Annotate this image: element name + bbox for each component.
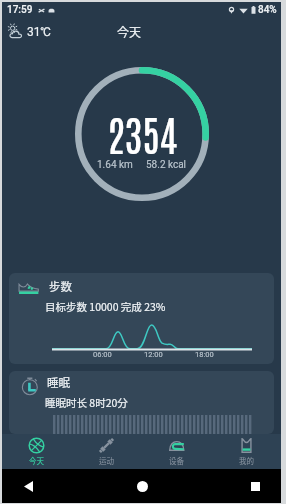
- staticText: 我的: [239, 455, 254, 466]
- staticText: 今天: [117, 23, 142, 40]
- button[interactable]: Back: [16, 474, 40, 498]
- staticText: 58.2 kcal: [146, 159, 187, 171]
- staticText: 目标步数 10000 完成 23%: [45, 299, 166, 314]
- staticText: 31℃: [27, 25, 52, 39]
- button[interactable]: 今天: [2, 434, 71, 469]
- button[interactable]: 睡眠: [9, 371, 274, 434]
- staticText: 设备: [169, 455, 184, 466]
- staticText: 12:00: [144, 350, 163, 359]
- staticText: 06:00: [93, 350, 112, 359]
- staticText: 2354: [107, 105, 178, 159]
- staticText: 睡眠: [47, 374, 70, 391]
- button[interactable]: Recent apps: [243, 474, 267, 498]
- staticText: 1.64 km: [97, 159, 133, 171]
- staticText: 运动: [99, 455, 114, 466]
- button[interactable]: 步数: [9, 273, 274, 364]
- staticText: 18:00: [195, 350, 214, 359]
- button[interactable]: 运动: [71, 434, 141, 469]
- button[interactable]: Home: [130, 474, 154, 498]
- staticText: 今天: [29, 455, 44, 466]
- button[interactable]: 设备: [141, 434, 211, 469]
- staticText: 步数: [49, 278, 72, 295]
- staticText: 84%: [258, 4, 277, 16]
- staticText: 17:59: [7, 4, 33, 16]
- button[interactable]: 我的: [211, 434, 281, 469]
- staticText: 睡眠时长 8时20分: [45, 395, 128, 410]
